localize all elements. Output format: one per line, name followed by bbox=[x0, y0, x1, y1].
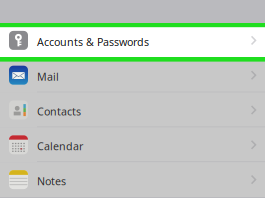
staticText: Accounts & Passwords bbox=[37, 35, 149, 49]
button[interactable]: Mail bbox=[0, 58, 265, 93]
staticText: Calendar bbox=[37, 139, 83, 153]
staticText: Contacts bbox=[37, 104, 81, 118]
button[interactable]: Accounts & Passwords bbox=[0, 23, 265, 58]
button[interactable]: Notes bbox=[0, 162, 265, 197]
staticText: Notes bbox=[37, 174, 66, 188]
button[interactable]: Contacts bbox=[0, 93, 265, 127]
button[interactable]: Calendar bbox=[0, 127, 265, 162]
staticText: Mail bbox=[37, 69, 59, 84]
